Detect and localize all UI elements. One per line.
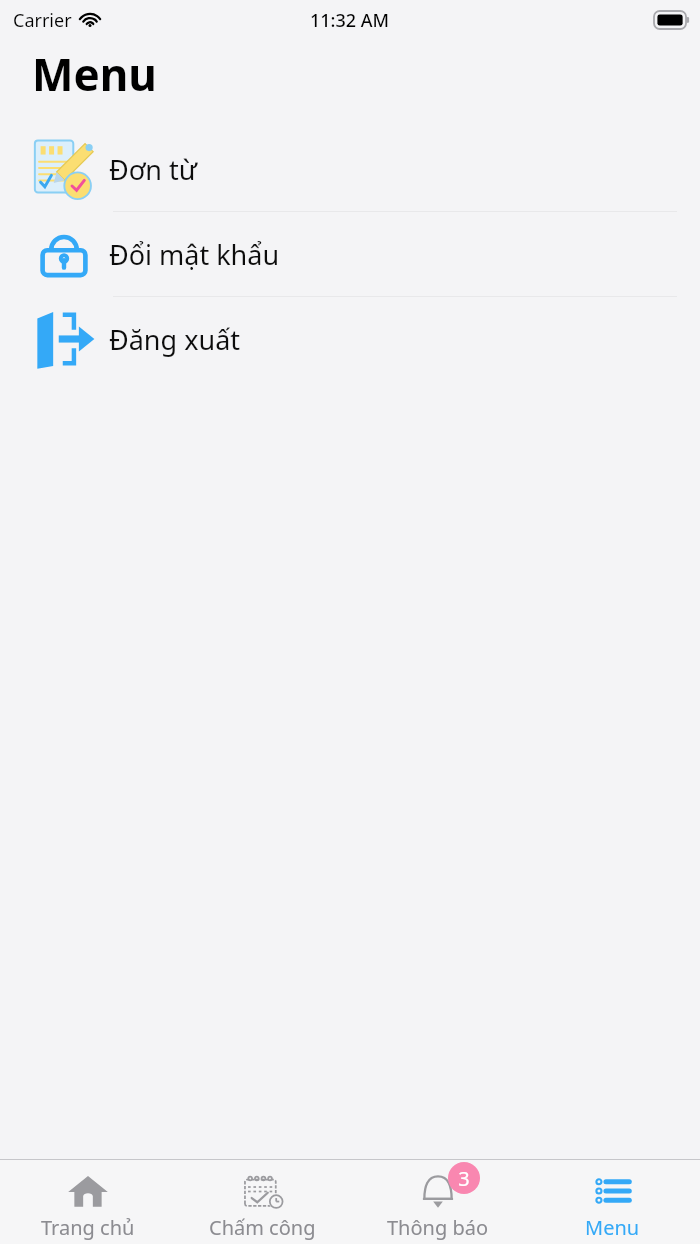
staticText: Đăng xuất <box>109 321 241 358</box>
staticText: Thông báo <box>387 1214 489 1241</box>
staticText: Menu <box>32 44 157 104</box>
button[interactable]: Trang chủ <box>0 1160 175 1244</box>
button[interactable]: Đơn từ <box>0 127 700 211</box>
button[interactable]: Chấm công <box>175 1160 350 1244</box>
other: Đổi mật khẩu <box>33 223 95 285</box>
button[interactable]: Đăng xuất <box>0 297 700 381</box>
button[interactable]: Đổi mật khẩu <box>0 212 700 296</box>
staticText: Chấm công <box>209 1214 316 1241</box>
button[interactable]: 3 <box>350 1160 525 1244</box>
staticText: 11:32 AM <box>310 8 390 33</box>
staticText: Đơn từ <box>109 151 197 188</box>
other: Đơn từ <box>33 138 95 200</box>
button[interactable]: Menu <box>525 1160 700 1244</box>
staticText: Trang chủ <box>41 1214 135 1241</box>
staticText: Đổi mật khẩu <box>109 236 280 273</box>
staticText: Menu <box>585 1214 640 1241</box>
staticText: Carrier <box>13 8 72 33</box>
other: Đăng xuất <box>33 308 95 370</box>
staticText: 3 <box>458 1165 470 1192</box>
